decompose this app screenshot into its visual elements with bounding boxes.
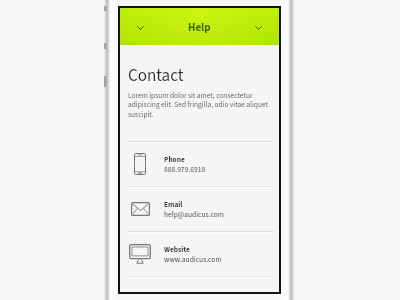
button[interactable]: Phone [128, 141, 274, 186]
button[interactable]: Next section [250, 19, 267, 36]
staticText: help@audicus.com [164, 209, 224, 220]
staticText: Phone [164, 154, 185, 165]
staticText: www.audicus.com [164, 254, 222, 265]
staticText: Website [164, 244, 190, 255]
button[interactable]: Email [128, 186, 274, 231]
staticText: Email [164, 199, 183, 210]
button[interactable]: Previous section [132, 19, 149, 36]
staticText: Contact [128, 64, 184, 88]
staticText: Help [188, 20, 211, 36]
staticText: Lorem ipsum dolor sit amet, consectetur … [128, 90, 276, 120]
staticText: 888.979.6918 [164, 164, 206, 175]
button[interactable]: Website [128, 231, 274, 276]
